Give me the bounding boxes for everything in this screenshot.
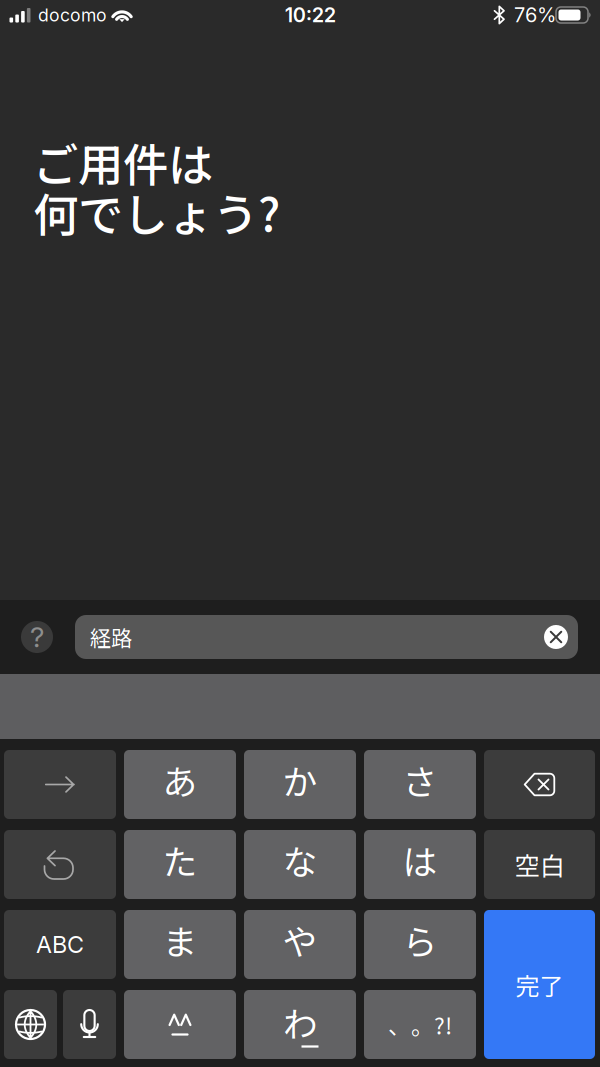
button[interactable]: Switch keyboard <box>4 990 57 1059</box>
staticText: ま <box>162 915 197 965</box>
staticText: わ <box>283 997 318 1048</box>
staticText: ? <box>30 620 44 654</box>
button[interactable]: 完了 <box>484 910 595 1059</box>
button[interactable]: あ <box>124 750 236 819</box>
button[interactable]: 空白 <box>484 830 595 899</box>
staticText: 10:22 <box>285 3 336 27</box>
button[interactable]: な <box>244 830 356 899</box>
staticText: か <box>282 755 317 805</box>
staticText: 完了 <box>515 967 563 1002</box>
button[interactable]: ま <box>124 910 236 979</box>
button[interactable]: Dictate <box>63 990 116 1059</box>
staticText: ABC <box>36 930 84 959</box>
staticText: あ <box>162 755 197 805</box>
staticText: 空白 <box>514 846 564 883</box>
button[interactable]: や <box>244 910 356 979</box>
button[interactable]: た <box>124 830 236 899</box>
button[interactable]: Help <box>21 621 53 653</box>
staticText: や <box>282 915 317 965</box>
button[interactable]: Next <box>4 750 116 819</box>
button[interactable]: わ <box>244 990 356 1059</box>
button[interactable]: Undo <box>4 830 116 899</box>
staticText: 76% <box>514 3 556 27</box>
button[interactable]: 経路 <box>75 615 578 659</box>
button[interactable]: Emoticon <box>124 990 236 1059</box>
staticText: ご用件は <box>33 129 213 195</box>
staticText: た <box>162 835 197 885</box>
staticText: な <box>282 835 317 885</box>
staticText: ら <box>402 915 437 965</box>
staticText: 何でしょう? <box>33 179 280 245</box>
button[interactable]: さ <box>364 750 476 819</box>
button[interactable]: ABC <box>4 910 116 979</box>
button[interactable]: Delete <box>484 750 595 819</box>
button[interactable]: 、。?! <box>364 990 476 1059</box>
staticText: 経路 <box>90 622 132 652</box>
button[interactable]: は <box>364 830 476 899</box>
button[interactable]: ら <box>364 910 476 979</box>
staticText: 、。?! <box>388 1008 452 1041</box>
staticText: さ <box>402 755 437 805</box>
staticText: docomo <box>38 4 107 26</box>
staticText: は <box>402 835 437 885</box>
button[interactable]: か <box>244 750 356 819</box>
